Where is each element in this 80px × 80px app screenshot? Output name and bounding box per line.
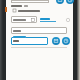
button[interactable] bbox=[13, 9, 40, 12]
button[interactable]: Amount bbox=[11, 37, 48, 45]
button[interactable]: Time bbox=[40, 18, 56, 22]
button[interactable]: Options bbox=[66, 18, 70, 22]
button[interactable]: Send message bbox=[52, 37, 60, 45]
button[interactable]: Notes bbox=[11, 27, 67, 34]
button[interactable]: Set reminder bbox=[62, 37, 70, 45]
button[interactable]: Start date bbox=[11, 16, 37, 23]
button[interactable]: Schedule bbox=[66, 0, 74, 4]
button[interactable]: Compose bbox=[56, 0, 64, 4]
